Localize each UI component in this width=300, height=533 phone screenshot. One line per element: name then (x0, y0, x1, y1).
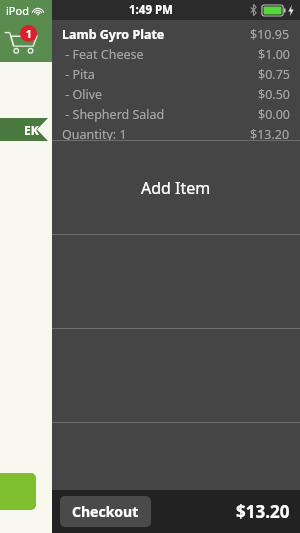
staticText: EK (24, 122, 39, 138)
button[interactable]: Action (0, 473, 36, 510)
staticText: iPod (6, 3, 29, 18)
staticText: - Olive (62, 86, 103, 103)
button[interactable]: Lamb Gyro Plate (52, 20, 300, 140)
staticText: - Pita (62, 66, 95, 83)
button[interactable]: Checkout (60, 496, 151, 527)
button[interactable]: EK (0, 118, 52, 141)
staticText: $0.50 (258, 86, 290, 103)
staticText: Add Item (141, 177, 211, 199)
staticText: $0.00 (258, 106, 290, 123)
staticText: $0.75 (258, 66, 290, 83)
staticText: Quantity: 1 (62, 126, 127, 140)
button[interactable]: Cart (4, 30, 38, 56)
staticText: 1 (26, 27, 32, 41)
staticText: - Feat Cheese (62, 46, 144, 63)
staticText: $13.20 (250, 126, 290, 140)
staticText: Checkout (72, 502, 139, 521)
staticText: $13.20 (236, 500, 290, 523)
staticText: $1.00 (258, 46, 290, 63)
staticText: 1:49 PM (129, 2, 173, 18)
staticText: - Shepherd Salad (62, 106, 165, 123)
staticText: Lamb Gyro Plate (62, 26, 165, 43)
staticText: $10.95 (250, 26, 290, 43)
button[interactable]: Add Item (52, 141, 300, 234)
